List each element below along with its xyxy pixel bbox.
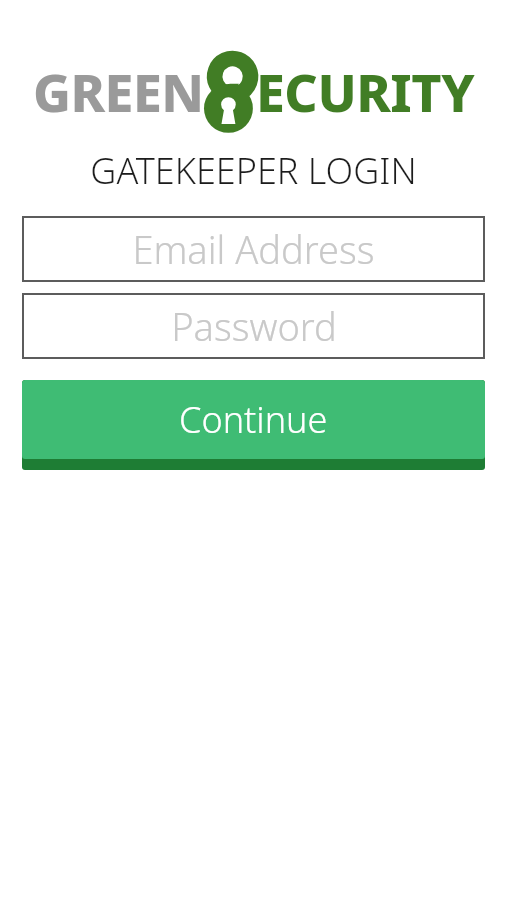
staticText: Password (171, 300, 337, 352)
button[interactable]: Continue (22, 380, 485, 470)
button[interactable]: Password (22, 293, 485, 359)
staticText: Continue (179, 395, 328, 444)
staticText: Email Address (132, 223, 375, 275)
staticText: ECURITY (256, 56, 475, 127)
staticText: GREEN (33, 56, 204, 127)
button[interactable]: Email Address (22, 216, 485, 282)
staticText: GATEKEEPER LOGIN (0, 146, 507, 195)
